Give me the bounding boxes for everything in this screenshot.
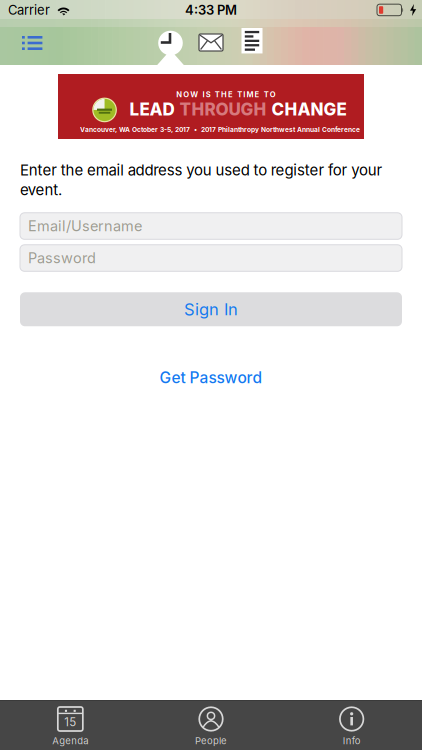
button[interactable]: Info bbox=[281, 707, 422, 746]
button[interactable]: Agenda tab bbox=[155, 27, 185, 57]
button[interactable]: People bbox=[141, 707, 281, 746]
staticText: 4:33 PM bbox=[185, 2, 237, 18]
button[interactable]: Messages bbox=[196, 27, 226, 57]
staticText: NOW IS THE TIME TO bbox=[176, 90, 276, 99]
textField[interactable]: Email/Username bbox=[28, 217, 402, 235]
staticText: People bbox=[195, 735, 227, 746]
staticText: Agenda bbox=[52, 735, 88, 746]
button[interactable]: Agenda bbox=[0, 707, 141, 746]
staticText: Get Password bbox=[159, 368, 262, 387]
staticText: Sign In bbox=[184, 299, 238, 319]
staticText: Email/Username bbox=[28, 217, 142, 235]
staticText: THROUGH bbox=[179, 99, 266, 120]
staticText: CHANGE bbox=[271, 99, 346, 120]
staticText: Carrier bbox=[8, 2, 50, 18]
staticText: Vancouver, WA October 3-5, 2017 • 2017 P… bbox=[80, 125, 360, 133]
button[interactable]: Get Password bbox=[149, 364, 272, 391]
staticText: 15 bbox=[64, 715, 76, 729]
staticText: Enter the email address you used to regi… bbox=[20, 161, 383, 199]
button[interactable]: Sign In bbox=[20, 292, 402, 326]
staticText: Password bbox=[28, 249, 96, 267]
button[interactable]: Menu bbox=[16, 27, 49, 58]
staticText: LEAD bbox=[129, 99, 174, 120]
staticText: Info bbox=[343, 735, 361, 746]
textField[interactable]: Password bbox=[28, 249, 402, 267]
button[interactable]: News bbox=[237, 27, 267, 57]
